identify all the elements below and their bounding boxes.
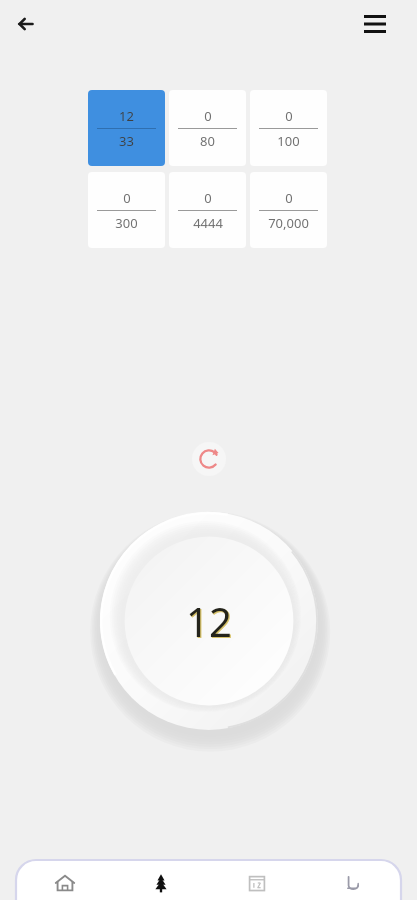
button[interactable]: Calendar <box>209 860 305 900</box>
button[interactable]: Tree <box>113 860 209 900</box>
button[interactable]: 0 <box>169 90 246 166</box>
button[interactable]: 0 <box>169 172 246 248</box>
staticText: 0 <box>123 189 131 207</box>
staticText: 12 <box>186 594 232 648</box>
button[interactable]: 0 <box>250 172 327 248</box>
button[interactable]: Menu <box>356 5 394 43</box>
button[interactable]: Reset <box>192 442 226 476</box>
button[interactable]: 12 <box>88 90 165 166</box>
staticText: 12 <box>119 107 134 125</box>
staticText: 12 <box>187 595 233 649</box>
staticText: 4444 <box>193 214 223 232</box>
button[interactable]: Counter dial, 12 <box>88 500 330 742</box>
staticText: 33 <box>119 132 134 150</box>
staticText: 0 <box>204 107 212 125</box>
button[interactable]: 0 <box>250 90 327 166</box>
button[interactable]: Home <box>16 860 113 900</box>
button[interactable]: 0 <box>88 172 165 248</box>
staticText: 0 <box>285 107 293 125</box>
staticText: 70,000 <box>268 214 309 232</box>
staticText: 100 <box>277 132 300 150</box>
button[interactable]: Back <box>8 6 44 42</box>
button[interactable]: Alarm <box>305 860 401 900</box>
staticText: 0 <box>204 189 212 207</box>
staticText: 300 <box>115 214 138 232</box>
staticText: 0 <box>285 189 293 207</box>
staticText: 80 <box>200 132 215 150</box>
